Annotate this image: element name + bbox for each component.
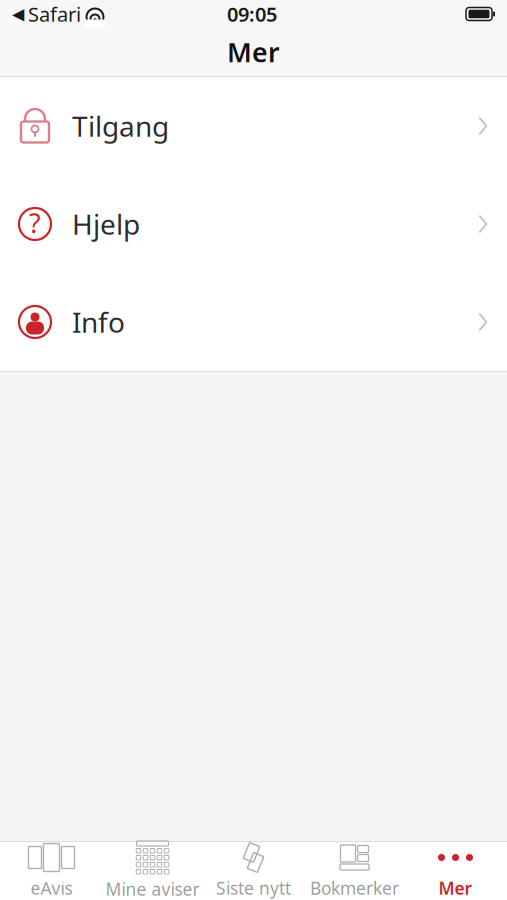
button[interactable]: Tilgang: [0, 77, 507, 175]
staticText: Bokmerker: [310, 876, 399, 899]
staticText: Info: [72, 303, 125, 341]
staticText: Safari: [28, 1, 81, 27]
staticText: eAvis: [30, 876, 72, 899]
staticText: ?: [29, 205, 41, 241]
button[interactable]: eAvis: [1, 842, 102, 900]
staticText: Mer: [438, 876, 472, 899]
staticText: Tilgang: [72, 107, 169, 145]
button[interactable]: Mine aviser: [102, 842, 203, 900]
button[interactable]: Info: [0, 273, 507, 371]
button[interactable]: Bokmerker: [304, 842, 405, 900]
button[interactable]: ?: [0, 175, 507, 273]
staticText: Hjelp: [72, 205, 140, 243]
button[interactable]: Siste nytt: [203, 842, 304, 900]
staticText: Mine aviser: [105, 877, 199, 900]
staticText: 09:05: [227, 1, 277, 27]
staticText: ◀: [12, 5, 24, 23]
button[interactable]: Mer: [405, 842, 506, 900]
staticText: Siste nytt: [216, 876, 291, 899]
staticText: Mer: [227, 34, 280, 70]
